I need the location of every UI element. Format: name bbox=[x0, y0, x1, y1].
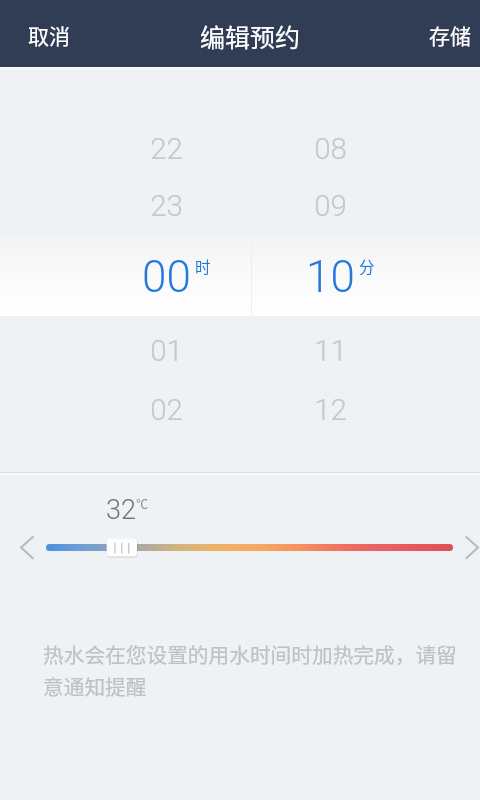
staticText: ℃ bbox=[136, 495, 149, 512]
staticText: 32 bbox=[106, 494, 136, 526]
button[interactable]: 09 bbox=[282, 186, 378, 226]
button[interactable]: 00 bbox=[118, 250, 214, 304]
button[interactable]: 12 bbox=[282, 390, 378, 430]
staticText: 00 bbox=[142, 251, 191, 303]
staticText: 10 bbox=[306, 251, 355, 303]
button[interactable]: 10 bbox=[282, 250, 378, 304]
staticText: 11 bbox=[314, 334, 347, 369]
staticText: 23 bbox=[150, 189, 183, 224]
button[interactable]: 取消 bbox=[0, 0, 98, 67]
staticText: 存储 bbox=[429, 20, 471, 50]
staticText: 22 bbox=[150, 132, 183, 167]
staticText: 12 bbox=[314, 393, 347, 428]
staticText: 09 bbox=[314, 189, 347, 224]
staticText: 取消 bbox=[28, 20, 70, 50]
staticText: 08 bbox=[314, 132, 347, 167]
staticText: 01 bbox=[150, 334, 183, 369]
staticText: 分 bbox=[359, 255, 375, 277]
button[interactable]: 01 bbox=[118, 331, 214, 371]
button[interactable]: 存储 bbox=[401, 0, 480, 67]
button[interactable]: 08 bbox=[282, 129, 378, 169]
staticText: 编辑预约 bbox=[200, 18, 301, 54]
staticText: 02 bbox=[150, 393, 183, 428]
button[interactable]: 22 bbox=[118, 129, 214, 169]
button[interactable]: 02 bbox=[118, 390, 214, 430]
staticText: 热水会在您设置的用水时间时加热完成，请留意通知提醒 bbox=[43, 639, 459, 701]
staticText: 时 bbox=[195, 255, 211, 277]
button[interactable]: 23 bbox=[118, 186, 214, 226]
button[interactable]: Temperature slider bbox=[106, 537, 138, 558]
button[interactable]: 11 bbox=[282, 331, 378, 371]
